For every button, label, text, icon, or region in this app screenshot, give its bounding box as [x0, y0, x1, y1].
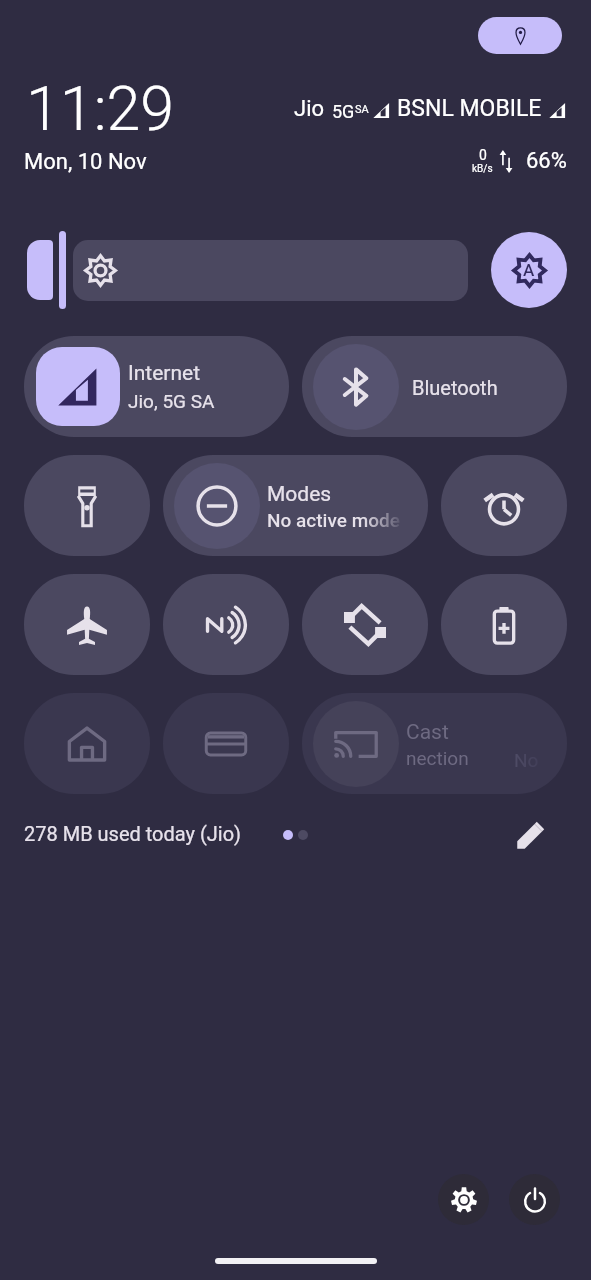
button[interactable]: Airplane mode: [24, 574, 150, 675]
button[interactable]: Power: [509, 1174, 560, 1225]
button[interactable]: Auto rotate: [302, 574, 428, 675]
staticText: Mon, 10 Nov: [24, 149, 147, 175]
staticText: 0: [479, 147, 487, 163]
button[interactable]: Location in use: [478, 17, 562, 54]
staticText: 66%: [526, 148, 567, 174]
button[interactable]: Battery saver: [441, 574, 567, 675]
staticText: Internet: [128, 361, 201, 386]
button[interactable]: Wallet: [163, 693, 289, 794]
staticText: Jio, 5G SA: [128, 390, 215, 412]
staticText: 11:29: [26, 73, 175, 144]
button[interactable]: Brightness: [24, 231, 468, 309]
staticText: A: [523, 260, 535, 280]
staticText: No active mode: [267, 509, 400, 531]
staticText: Bluetooth: [412, 376, 498, 399]
button[interactable]: Settings: [438, 1174, 489, 1225]
button[interactable]: Flashlight: [24, 455, 150, 556]
staticText: Cast: [406, 720, 449, 745]
button[interactable]: Edit tiles: [506, 809, 556, 859]
staticText: Modes: [267, 482, 332, 507]
button[interactable]: Bluetooth: [302, 336, 567, 437]
staticText: SA: [355, 103, 369, 116]
button[interactable]: Internet: [24, 336, 289, 437]
button[interactable]: NFC: [163, 574, 289, 675]
staticText: BSNL MOBILE: [397, 95, 542, 122]
button[interactable]: Auto brightness: [491, 232, 567, 308]
staticText: 5G: [332, 101, 355, 122]
staticText: kB/s: [472, 163, 493, 175]
staticText: Jio: [294, 96, 325, 122]
button[interactable]: Modes: [163, 455, 428, 556]
button[interactable]: Cast: [302, 693, 567, 794]
staticText: No: [514, 749, 539, 771]
staticText: 278 MB used today (Jio): [24, 822, 242, 845]
staticText: nection: [406, 747, 469, 769]
button[interactable]: Alarm: [441, 455, 567, 556]
button[interactable]: Home: [24, 693, 150, 794]
